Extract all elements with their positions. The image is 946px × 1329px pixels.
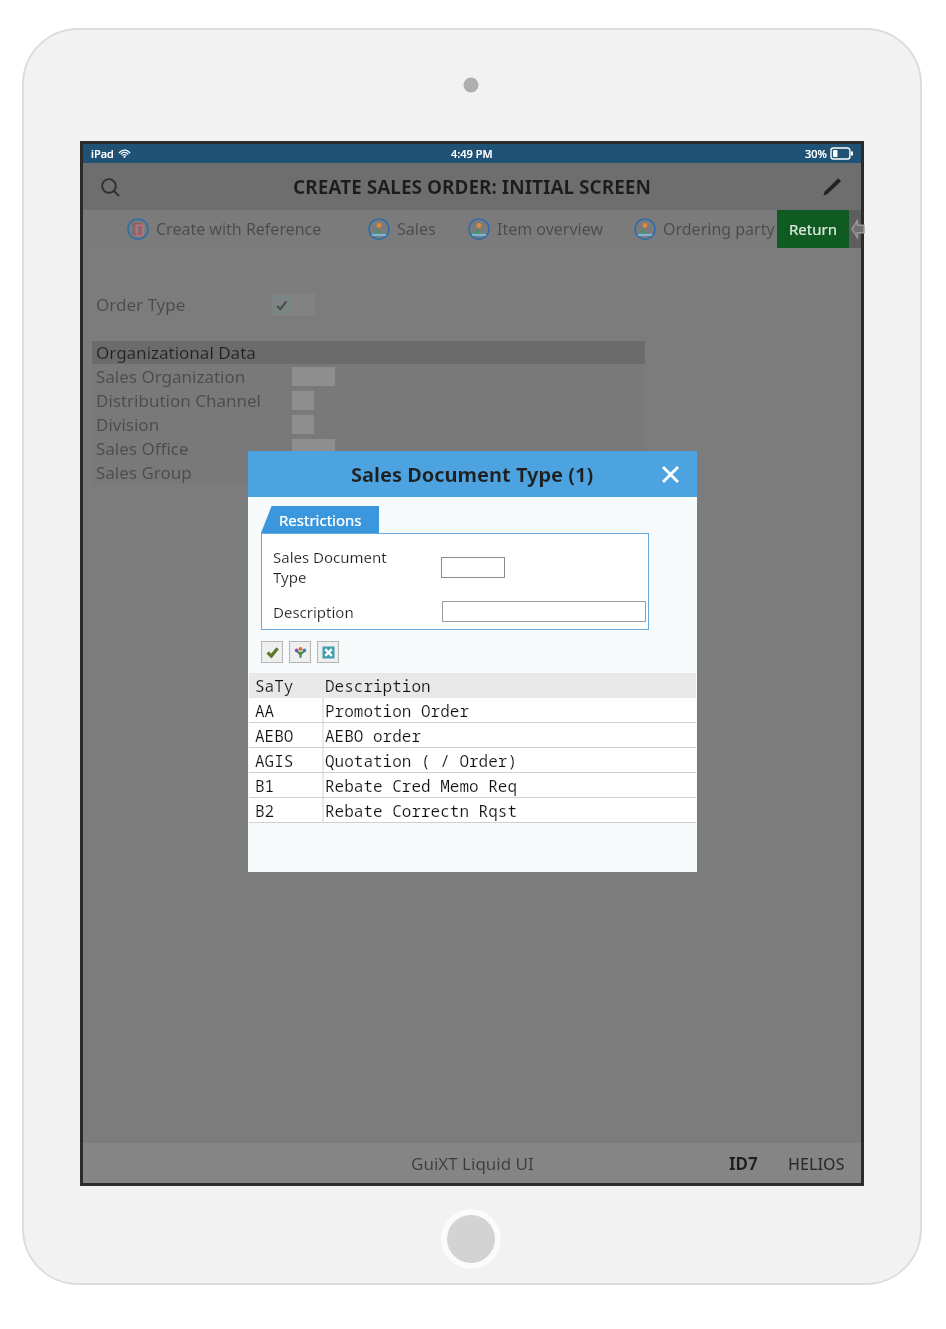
- button[interactable]: Item overview: [466, 218, 606, 240]
- staticText: AEBO order: [325, 725, 422, 747]
- staticText: 30%: [805, 146, 827, 161]
- staticText: Division: [96, 413, 160, 436]
- staticText: Sales Document Type (1): [351, 461, 594, 488]
- staticText: AEBO: [255, 725, 294, 747]
- staticText: AA: [255, 700, 275, 722]
- staticText: HELIOS: [788, 1153, 845, 1175]
- staticText: Sales Organization: [96, 365, 246, 388]
- staticText: Sales: [397, 218, 436, 240]
- button[interactable]: Back: [849, 210, 861, 248]
- button[interactable]: AGIS: [249, 748, 696, 773]
- staticText: 4:49 PM: [451, 146, 493, 161]
- button[interactable]: Create with Reference: [125, 218, 324, 240]
- button[interactable]: Multiple selection: [289, 641, 311, 663]
- button[interactable]: Return: [777, 210, 849, 248]
- button[interactable]: Edit: [813, 170, 847, 204]
- staticText: Promotion Order: [325, 700, 470, 722]
- staticText: Ordering party: [663, 218, 775, 240]
- staticText: Rebate Correctn Rqst: [325, 800, 518, 822]
- button[interactable]: B2: [249, 798, 696, 823]
- button[interactable]: Sales: [366, 218, 438, 240]
- staticText: Description: [273, 602, 354, 622]
- button[interactable]: Ordering party: [632, 218, 777, 240]
- staticText: Create with Reference: [156, 218, 322, 240]
- staticText: Restrictions: [279, 510, 362, 530]
- staticText: iPad: [91, 146, 114, 161]
- button[interactable]: Close: [655, 459, 685, 489]
- staticText: Sales Office: [96, 437, 189, 460]
- staticText: Distribution Channel: [96, 389, 261, 412]
- staticText: B1: [255, 775, 275, 797]
- button[interactable]: B1: [249, 773, 696, 798]
- button[interactable]: Confirm: [261, 641, 283, 663]
- staticText: Quotation ( / Order): [325, 750, 518, 772]
- staticText: Sales Group: [96, 461, 192, 484]
- staticText: Return: [789, 219, 837, 239]
- staticText: Description: [325, 675, 431, 697]
- staticText: Item overview: [497, 218, 604, 240]
- staticText: CREATE SALES ORDER: INITIAL SCREEN: [293, 174, 651, 200]
- button[interactable]: Search: [93, 170, 127, 204]
- staticText: ID7: [729, 1152, 758, 1175]
- button[interactable]: AA: [249, 698, 696, 723]
- staticText: Sales Document Type: [273, 547, 391, 587]
- staticText: AGIS: [255, 750, 294, 772]
- button[interactable]: Cancel: [317, 641, 339, 663]
- staticText: Organizational Data: [96, 341, 256, 364]
- staticText: SaTy: [255, 675, 294, 697]
- staticText: B2: [255, 800, 275, 822]
- staticText: Rebate Cred Memo Req: [325, 775, 518, 797]
- button[interactable]: AEBO: [249, 723, 696, 748]
- staticText: Order Type: [96, 293, 186, 316]
- staticText: GuiXT Liquid UI: [411, 1152, 534, 1175]
- button[interactable]: Home: [441, 1209, 501, 1269]
